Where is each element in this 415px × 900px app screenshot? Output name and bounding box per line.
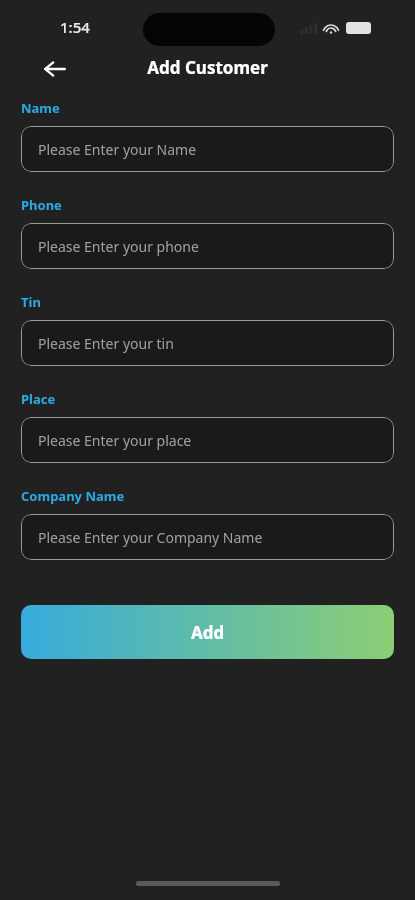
- staticText: Phone: [21, 196, 62, 214]
- staticText: Please Enter your tin: [38, 334, 174, 353]
- staticText: Company Name: [21, 487, 125, 505]
- staticText: Please Enter your Name: [38, 140, 197, 159]
- button[interactable]: Please Enter your Name: [21, 126, 394, 172]
- button[interactable]: Back: [36, 50, 74, 88]
- staticText: Please Enter your place: [38, 431, 192, 450]
- staticText: Place: [21, 390, 56, 408]
- staticText: Please Enter your Company Name: [38, 528, 263, 547]
- button[interactable]: Please Enter your Company Name: [21, 514, 394, 560]
- button[interactable]: Add: [21, 605, 394, 659]
- staticText: Add: [191, 621, 225, 644]
- staticText: 1:54: [60, 17, 90, 37]
- button[interactable]: Please Enter your tin: [21, 320, 394, 366]
- staticText: Add Customer: [0, 56, 415, 79]
- staticText: Tin: [21, 293, 41, 311]
- button[interactable]: Please Enter your place: [21, 417, 394, 463]
- staticText: Please Enter your phone: [38, 237, 199, 256]
- button[interactable]: Please Enter your phone: [21, 223, 394, 269]
- staticText: Name: [21, 99, 60, 117]
